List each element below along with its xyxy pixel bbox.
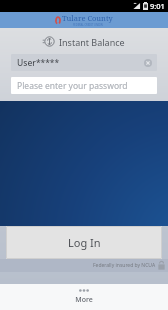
staticText: Federally insured by NCUA (93, 262, 156, 269)
staticText: Instant Balance (59, 36, 125, 48)
button[interactable]: Tulare County (56, 13, 113, 27)
staticText: User***** (17, 57, 60, 69)
button[interactable]: Please enter your password (11, 77, 157, 94)
staticText: FEDERAL CREDIT UNION (73, 23, 103, 27)
button[interactable]: More (62, 288, 106, 305)
button[interactable] (0, 101, 168, 226)
button[interactable]: Log In (6, 226, 162, 259)
staticText: 9:01 (150, 1, 165, 11)
button[interactable]: Instant Balance (0, 28, 168, 54)
button[interactable]: Clear username (142, 57, 153, 68)
staticText: Log In (68, 235, 101, 250)
button[interactable]: User***** (11, 54, 157, 71)
staticText: Please enter your password (17, 80, 128, 92)
staticText: More (75, 295, 93, 305)
staticText: Tulare County (62, 13, 113, 23)
